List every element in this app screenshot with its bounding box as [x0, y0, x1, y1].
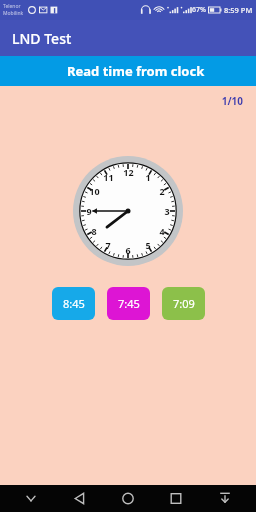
staticText: 11	[103, 171, 114, 183]
staticText: 7:45	[118, 296, 140, 311]
staticText: 12	[123, 166, 134, 178]
staticText: 8:59 PM	[224, 5, 253, 15]
staticText: 1/10	[0, 94, 243, 108]
button[interactable]: Back	[63, 485, 97, 512]
staticText: 3	[164, 205, 170, 217]
staticText: 9	[86, 205, 92, 217]
button[interactable]: 7:09	[162, 287, 205, 320]
button[interactable]: Read time from clock	[0, 56, 256, 86]
staticText: 8	[91, 225, 97, 237]
staticText: 67%	[192, 5, 206, 15]
staticText: 2	[159, 185, 165, 197]
staticText: LND Test	[12, 29, 72, 48]
button[interactable]: Home	[111, 485, 145, 512]
staticText: 8:45	[63, 296, 85, 311]
staticText: 7:09	[173, 296, 195, 311]
staticText: 10	[89, 185, 100, 197]
staticText: Mobilink	[3, 10, 24, 17]
staticText: Telenor	[3, 3, 21, 10]
staticText: 7	[105, 239, 111, 251]
button[interactable]: 7:45	[107, 287, 150, 320]
button[interactable]: Hide keyboard	[14, 485, 48, 512]
button[interactable]: Collapse	[208, 485, 242, 512]
button[interactable]: 8:45	[52, 287, 95, 320]
button[interactable]: Recent apps	[159, 485, 193, 512]
staticText: 5	[145, 239, 151, 251]
staticText: 1	[145, 171, 151, 183]
staticText: 6	[125, 244, 131, 256]
staticText: 4	[159, 225, 165, 237]
staticText: Read time from clock	[67, 62, 205, 80]
button[interactable]: LND Test	[0, 20, 256, 56]
